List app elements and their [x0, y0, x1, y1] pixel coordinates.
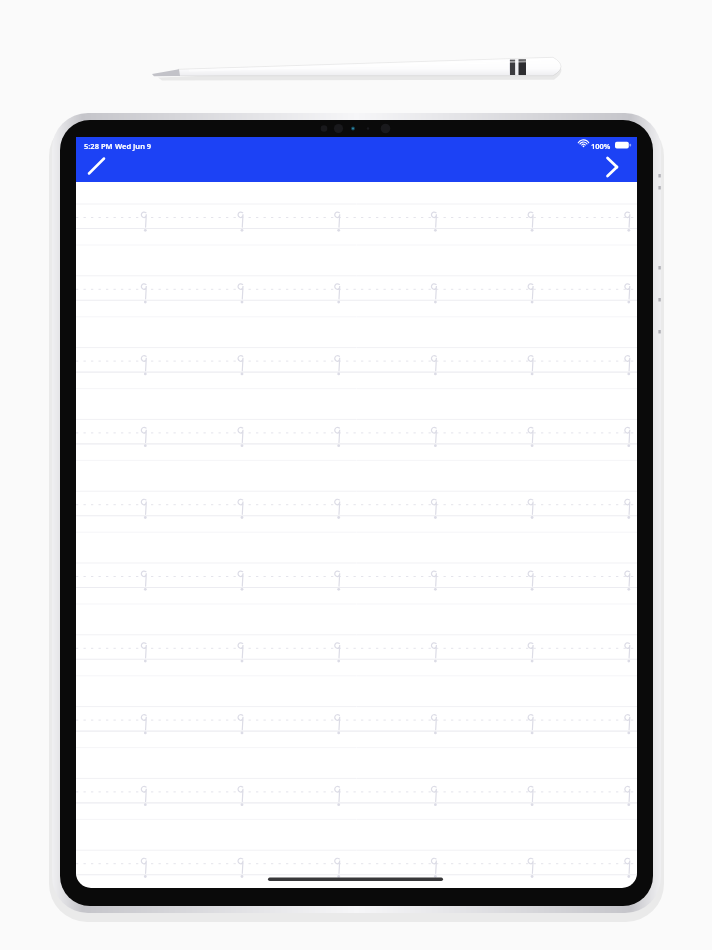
button[interactable]: Draw: [80, 155, 126, 182]
staticText: 5:28 PM: [84, 141, 113, 151]
staticText: 100%: [591, 141, 611, 151]
staticText: Wed Jun 9: [115, 141, 152, 151]
button[interactable]: Next page: [594, 153, 637, 182]
button[interactable]: Handwriting practice sheet: [76, 182, 637, 888]
